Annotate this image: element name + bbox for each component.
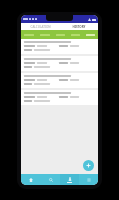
button[interactable]: Profile xyxy=(60,174,79,185)
button[interactable] xyxy=(83,30,98,39)
button[interactable]: HISTORY xyxy=(59,23,98,30)
button[interactable] xyxy=(37,30,53,39)
button[interactable]: Add new calculation xyxy=(83,160,94,171)
button[interactable] xyxy=(53,30,68,39)
button[interactable] xyxy=(21,73,98,88)
button[interactable]: Search xyxy=(41,174,60,185)
staticText: HISTORY xyxy=(72,25,86,29)
button[interactable]: More xyxy=(79,174,98,185)
button[interactable] xyxy=(21,90,98,105)
button[interactable] xyxy=(68,30,83,39)
staticText: CALCULATION xyxy=(30,25,51,29)
button[interactable] xyxy=(21,39,98,54)
button[interactable] xyxy=(21,30,37,39)
button[interactable]: CALCULATION xyxy=(21,23,59,30)
button[interactable] xyxy=(21,56,98,71)
button[interactable]: Home xyxy=(21,174,41,185)
